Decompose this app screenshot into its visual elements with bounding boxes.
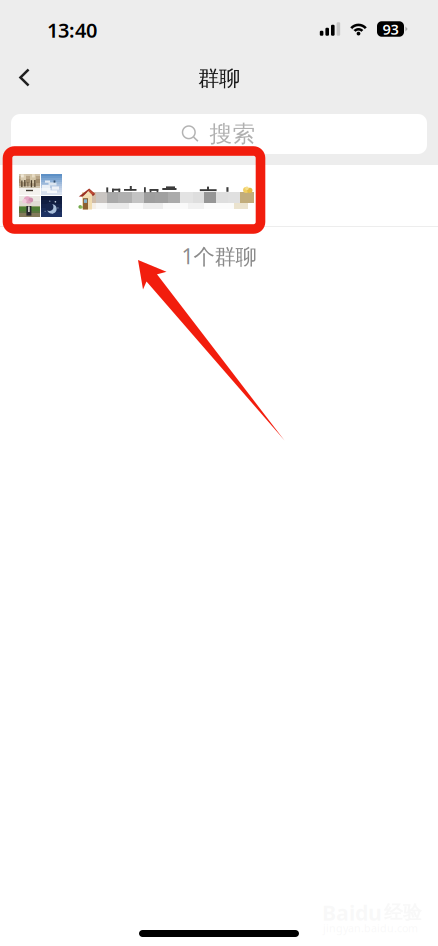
staticText: 搜索 xyxy=(209,120,255,148)
button[interactable]: Back xyxy=(3,56,45,98)
staticText: 群聊 xyxy=(198,65,240,92)
staticText: 93 xyxy=(382,19,398,39)
button[interactable]: 搜索 xyxy=(11,114,427,154)
staticText: 13:40 xyxy=(47,17,97,43)
button[interactable] xyxy=(0,165,438,227)
staticText: 1个群聊 xyxy=(181,242,256,270)
